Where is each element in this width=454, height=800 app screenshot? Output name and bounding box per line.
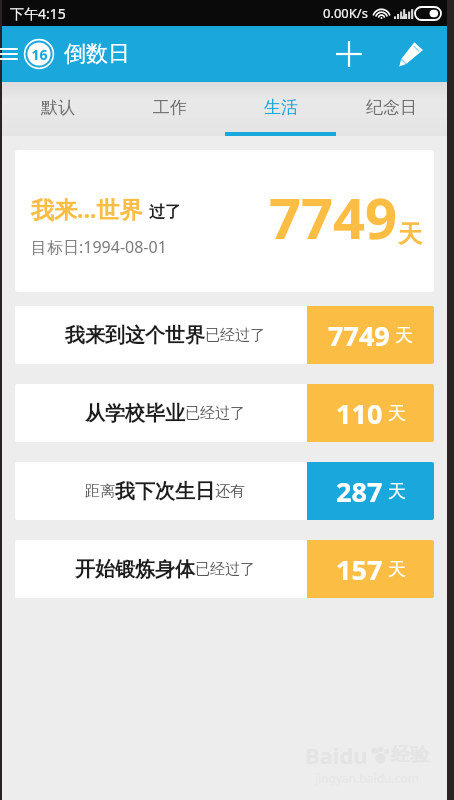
button[interactable]: 工作 [114, 82, 225, 136]
button[interactable]: 纪念日 [336, 82, 447, 136]
staticText: 我下次生日 [115, 479, 215, 504]
staticText: 已经过了 [195, 560, 255, 579]
staticText: Baidu [305, 740, 368, 770]
staticText: 目标日:1994-08-01 [31, 236, 167, 258]
staticText: 0.00K/s [323, 4, 368, 22]
staticText: 110 [336, 395, 383, 432]
staticText: 天 [388, 480, 406, 503]
staticText: 已经过了 [205, 326, 265, 345]
staticText: 开始锻炼身体 [75, 557, 195, 582]
staticText: 已经过了 [185, 404, 245, 423]
staticText: 工作 [153, 97, 187, 118]
button[interactable]: 我来...世界 [15, 150, 434, 292]
button[interactable]: 我来到这个世界 [15, 306, 434, 364]
button[interactable]: Add [327, 32, 371, 76]
staticText: 默认 [41, 97, 75, 118]
staticText: 7749 [269, 179, 398, 255]
staticText: 天 [398, 219, 422, 249]
staticText: 过了 [149, 202, 181, 222]
button[interactable]: Edit [389, 32, 433, 76]
staticText: 我来到这个世界 [65, 323, 205, 348]
staticText: 天 [388, 558, 406, 581]
staticText: 天 [388, 402, 406, 425]
button[interactable]: Menu [0, 39, 23, 69]
button[interactable]: 距离 [15, 462, 434, 520]
staticText: 7749 [328, 317, 390, 354]
staticText: 天 [395, 324, 413, 347]
staticText: 生活 [264, 97, 298, 118]
staticText: 16 [31, 45, 48, 64]
button[interactable]: 开始锻炼身体 [15, 540, 434, 598]
button[interactable]: 从学校毕业 [15, 384, 434, 442]
button[interactable]: 生活 [225, 82, 336, 136]
staticText: 我来...世界 [31, 193, 143, 224]
staticText: 287 [336, 473, 383, 510]
staticText: 157 [336, 551, 383, 588]
staticText: 下午4:15 [10, 4, 66, 23]
staticText: 经验 [391, 743, 429, 767]
staticText: 纪念日 [366, 97, 417, 118]
staticText: 倒数日 [64, 40, 130, 68]
button[interactable]: 默认 [2, 82, 114, 136]
staticText: 还有 [215, 482, 245, 501]
staticText: 距离 [85, 482, 115, 501]
staticText: 从学校毕业 [85, 401, 185, 426]
